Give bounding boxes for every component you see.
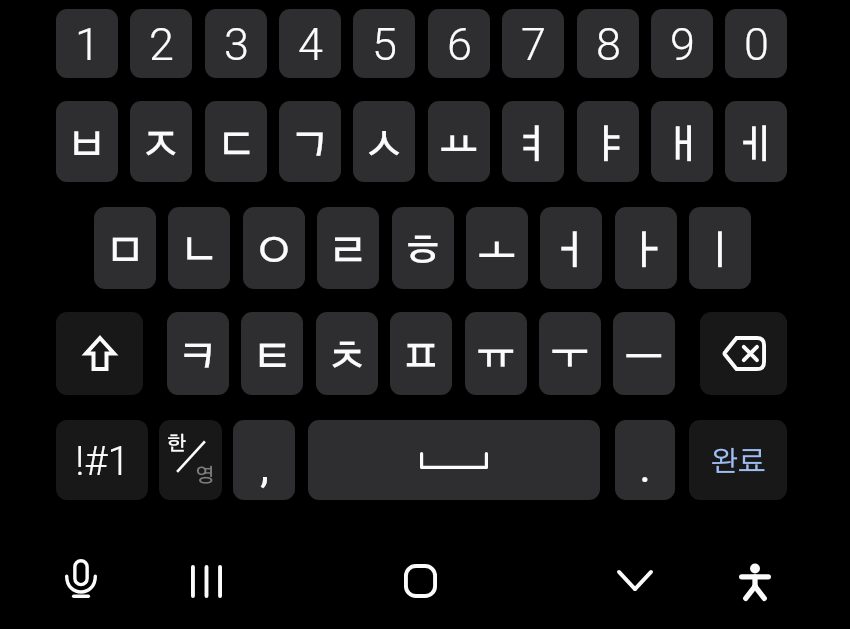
staticText: ㄷ: [216, 126, 256, 166]
button[interactable]: Recents: [179, 554, 233, 608]
button[interactable]: ㅑ: [577, 101, 639, 182]
staticText: ㅐ: [662, 126, 702, 166]
staticText: !#1: [75, 438, 130, 485]
button[interactable]: ㅈ: [130, 101, 192, 182]
staticText: ㅇ: [254, 232, 294, 272]
button[interactable]: ㅛ: [428, 101, 490, 182]
button[interactable]: ㅡ: [613, 312, 675, 395]
button[interactable]: ㅏ: [615, 207, 677, 289]
button[interactable]: ㅊ: [316, 312, 378, 395]
button[interactable]: 9: [651, 9, 713, 78]
staticText: ㅈ: [141, 126, 181, 166]
staticText: ㅛ: [439, 126, 479, 166]
button[interactable]: 8: [577, 9, 639, 78]
button[interactable]: ㄷ: [205, 101, 267, 182]
button[interactable]: 3: [205, 9, 267, 78]
staticText: ㄹ: [328, 232, 368, 272]
staticText: ㅔ: [736, 126, 776, 166]
staticText: ㅠ: [476, 338, 516, 378]
staticText: ㅍ: [401, 338, 441, 378]
staticText: ㅡ: [624, 338, 664, 378]
button[interactable]: !#1: [56, 420, 148, 500]
staticText: 7: [521, 18, 546, 71]
button[interactable]: ㅂ: [56, 101, 118, 182]
staticText: ㄴ: [179, 232, 219, 272]
staticText: 4: [298, 18, 323, 71]
button[interactable]: ㅕ: [502, 101, 564, 182]
staticText: ㅋ: [178, 338, 218, 378]
button[interactable]: 2: [130, 9, 192, 78]
staticText: 6: [447, 18, 472, 71]
staticText: ㅑ: [588, 126, 628, 166]
button[interactable]: ㅜ: [539, 312, 601, 395]
button[interactable]: ㅇ: [243, 207, 305, 289]
button[interactable]: ㅓ: [540, 207, 602, 289]
button[interactable]: Shift: [56, 312, 143, 395]
button[interactable]: 6: [428, 9, 490, 78]
staticText: 1: [75, 18, 100, 71]
button[interactable]: 4: [279, 9, 341, 78]
button[interactable]: ㅌ: [241, 312, 303, 395]
button[interactable]: ㅗ: [466, 207, 528, 289]
staticText: ㅅ: [364, 126, 404, 166]
staticText: ㅕ: [513, 126, 553, 166]
button[interactable]: 5: [353, 9, 415, 78]
button[interactable]: Voice input: [54, 551, 108, 605]
staticText: .: [639, 441, 651, 493]
staticText: ㅊ: [327, 338, 367, 378]
staticText: ㅣ: [700, 232, 740, 272]
button[interactable]: 7: [502, 9, 564, 78]
staticText: ㅏ: [626, 232, 666, 272]
staticText: ㅗ: [477, 232, 517, 272]
button[interactable]: 완료: [689, 420, 787, 500]
staticText: 2: [149, 18, 174, 71]
button[interactable]: ㅁ: [94, 207, 156, 289]
staticText: ㅜ: [550, 338, 590, 378]
button[interactable]: ㅣ: [689, 207, 751, 289]
button[interactable]: 0: [725, 9, 787, 78]
staticText: ㅎ: [403, 232, 443, 272]
button[interactable]: ㅠ: [465, 312, 527, 395]
staticText: 9: [670, 18, 695, 71]
staticText: ㅂ: [67, 126, 107, 166]
button[interactable]: ㅐ: [651, 101, 713, 182]
staticText: 영: [195, 466, 215, 486]
button[interactable]: Hide keyboard: [608, 553, 662, 607]
staticText: 5: [372, 18, 397, 71]
button[interactable]: Space: [308, 420, 600, 500]
staticText: 한: [167, 434, 187, 454]
staticText: ㅁ: [105, 232, 145, 272]
button[interactable]: 1: [56, 9, 118, 78]
staticText: 완료: [710, 448, 766, 477]
button[interactable]: Backspace: [700, 312, 787, 395]
staticText: ,: [260, 441, 269, 493]
button[interactable]: ㅋ: [167, 312, 229, 395]
button[interactable]: ㅎ: [392, 207, 454, 289]
button[interactable]: Korean English toggle: [159, 420, 222, 500]
button[interactable]: ,: [233, 420, 295, 500]
button[interactable]: Home: [393, 554, 447, 608]
staticText: 8: [596, 18, 621, 71]
staticText: 0: [744, 18, 769, 71]
button[interactable]: ㄹ: [317, 207, 379, 289]
button[interactable]: ㅔ: [725, 101, 787, 182]
staticText: ㅓ: [551, 232, 591, 272]
button[interactable]: ㄴ: [168, 207, 230, 289]
button[interactable]: .: [615, 420, 675, 500]
button[interactable]: Accessibility: [728, 555, 782, 609]
staticText: 3: [224, 18, 249, 71]
staticText: ㄱ: [290, 126, 330, 166]
button[interactable]: ㅍ: [390, 312, 452, 395]
button[interactable]: ㄱ: [279, 101, 341, 182]
staticText: ㅌ: [252, 338, 292, 378]
button[interactable]: ㅅ: [353, 101, 415, 182]
